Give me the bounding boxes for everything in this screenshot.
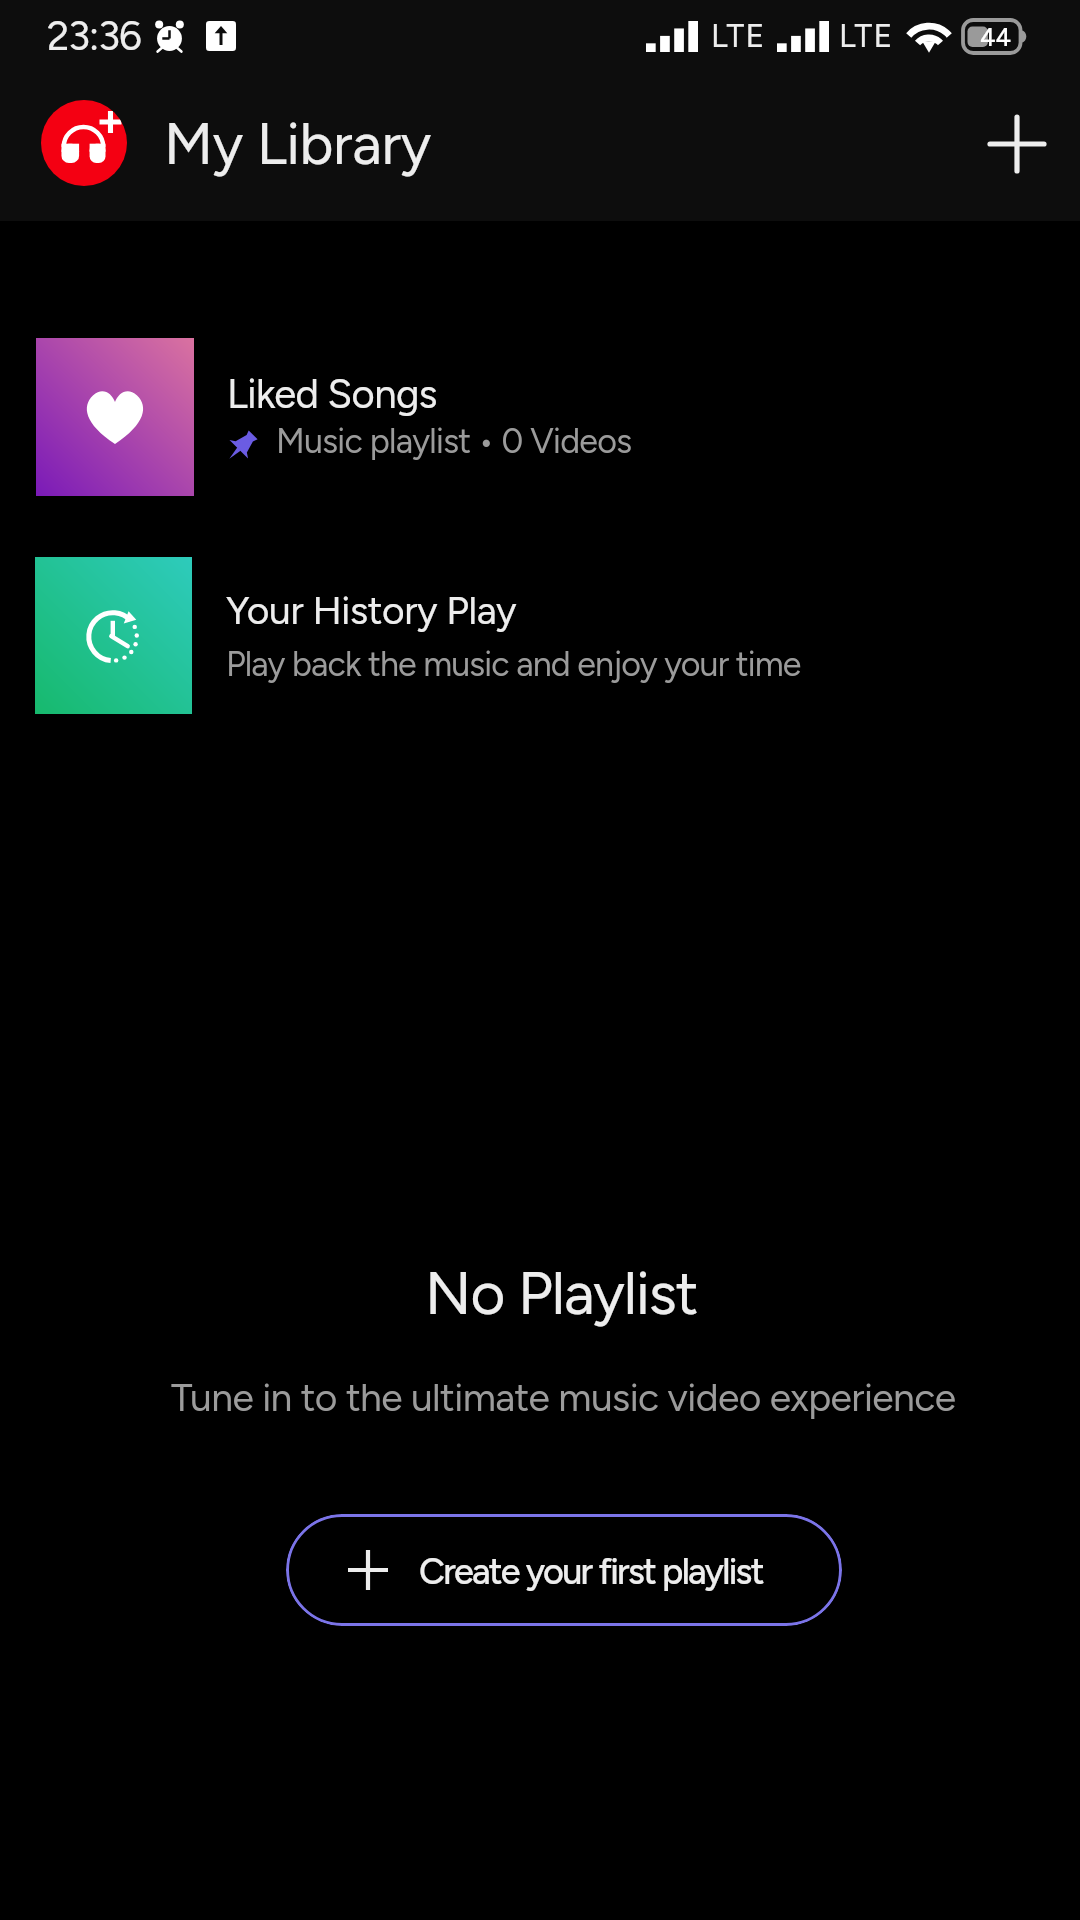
button[interactable]: Create your first playlist xyxy=(286,1514,842,1626)
staticText: Liked Songs xyxy=(227,370,437,418)
staticText: Play back the music and enjoy your time xyxy=(226,644,801,685)
button[interactable] xyxy=(0,551,1080,721)
staticText: Music playlist • 0 Videos xyxy=(276,421,632,462)
staticText: 44 xyxy=(980,22,1012,52)
button[interactable]: Add xyxy=(963,90,1071,198)
staticText: Your History Play xyxy=(226,587,516,634)
staticText: No Playlist xyxy=(425,1257,698,1329)
staticText: Tune in to the ultimate music video expe… xyxy=(171,1374,956,1421)
staticText: 23:36 xyxy=(47,12,141,60)
staticText: My Library xyxy=(164,109,431,179)
button[interactable] xyxy=(0,332,1080,502)
staticText: Create your first playlist xyxy=(419,1550,763,1593)
other: App logo xyxy=(41,100,127,186)
staticText: LTE xyxy=(711,17,766,55)
staticText: LTE xyxy=(839,17,894,55)
